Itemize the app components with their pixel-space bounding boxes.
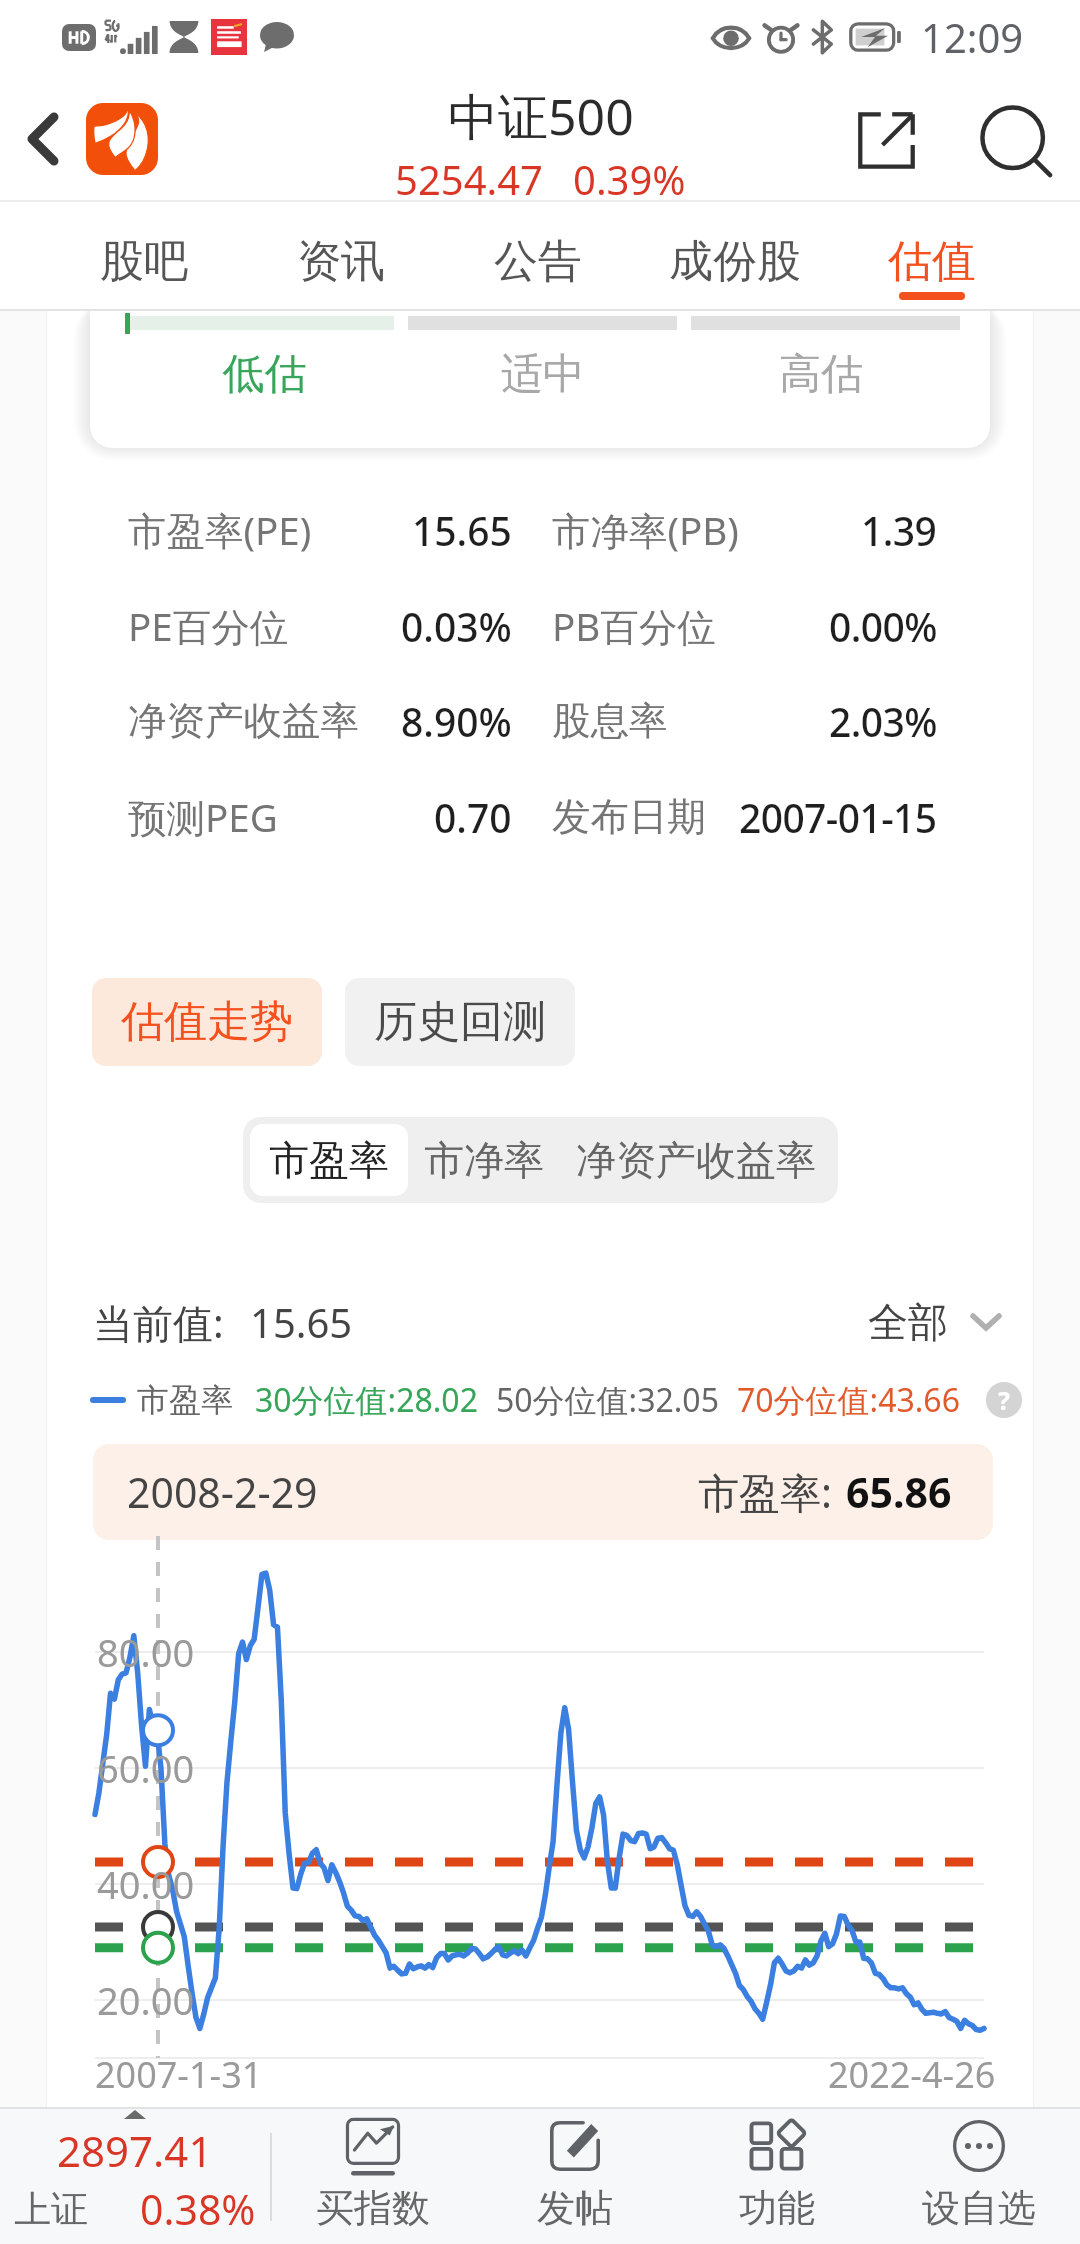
staticText: 适中	[404, 348, 682, 401]
staticText: 成份股	[669, 234, 801, 289]
staticText: 高估	[682, 348, 960, 401]
button[interactable]: Buy index	[272, 2109, 474, 2244]
button[interactable]: Help	[986, 1382, 1022, 1418]
button[interactable]: Eastmoney app	[86, 103, 158, 175]
button[interactable]: 估值走势	[92, 978, 322, 1066]
staticText: 2022-4-26	[828, 2050, 996, 2099]
staticText: 买指数	[316, 2184, 430, 2232]
button[interactable]: 市净率	[408, 1124, 560, 1196]
staticText: 全部	[868, 1297, 948, 1347]
staticText: 估值走势	[121, 995, 293, 1049]
staticText: 市盈率:	[698, 1464, 832, 1520]
staticText: 40.00	[97, 1858, 195, 1910]
staticText: 0.03%	[401, 600, 512, 653]
staticText: ?	[998, 1383, 1010, 1417]
staticText: 80.00	[97, 1626, 195, 1678]
staticText: 功能	[739, 2184, 815, 2232]
staticText: 发帖	[537, 2184, 613, 2232]
staticText: 60.00	[97, 1742, 195, 1794]
button[interactable]: 净资产收益率	[560, 1124, 831, 1196]
staticText: 20.00	[97, 1974, 195, 2026]
button[interactable]: 市盈率	[250, 1124, 408, 1196]
staticText: 设自选	[922, 2184, 1036, 2232]
button[interactable]: Post	[474, 2109, 676, 2244]
button[interactable]: Search	[960, 83, 1072, 195]
staticText: 市净率	[424, 1135, 544, 1185]
staticText: 0.38%	[140, 2181, 256, 2237]
staticText: 8.90%	[401, 695, 512, 748]
staticText: 15.65	[250, 1295, 353, 1349]
staticText: 上证	[14, 2186, 88, 2233]
staticText: 0.70	[434, 791, 512, 844]
staticText: 股息率	[552, 697, 668, 746]
staticText: 历史回测	[374, 995, 546, 1049]
button[interactable]: 估值	[833, 200, 1030, 311]
staticText: 当前值:	[93, 1295, 224, 1350]
button[interactable]: Range filter	[868, 1297, 1002, 1347]
button[interactable]: Functions	[676, 2109, 878, 2244]
staticText: 市净率(PB)	[552, 504, 739, 557]
staticText: 12:09	[921, 10, 1024, 64]
staticText: 30分位值:28.02	[255, 1378, 478, 1422]
staticText: 低估	[125, 348, 404, 401]
staticText: PB百分位	[552, 600, 716, 653]
button[interactable]: Back	[0, 84, 86, 194]
button[interactable]: 公告	[439, 200, 636, 311]
staticText: 净资产收益率	[128, 697, 359, 746]
button[interactable]: Add to watchlist	[878, 2109, 1080, 2244]
button[interactable]: Shanghai index	[0, 2109, 270, 2244]
staticText: 2897.41	[57, 2122, 213, 2179]
staticText: 发布日期	[552, 793, 706, 842]
button[interactable]: 历史回测	[345, 978, 575, 1066]
staticText: 50分位值:32.05	[496, 1378, 719, 1422]
staticText: 资讯	[297, 234, 385, 289]
staticText: 公告	[494, 234, 582, 289]
staticText: 2007-1-31	[95, 2050, 263, 2099]
staticText: 预测PEG	[128, 791, 278, 844]
staticText: 2008-2-29	[127, 1464, 318, 1520]
staticText: 股吧	[100, 234, 188, 289]
button[interactable]: Share	[848, 83, 960, 195]
staticText: 净资产收益率	[576, 1135, 816, 1185]
staticText: 65.86	[846, 1464, 952, 1520]
staticText: 5254.47	[395, 152, 543, 204]
staticText: 估值	[888, 234, 976, 289]
staticText: 市盈率(PE)	[128, 504, 312, 557]
button[interactable]: 股吧	[45, 200, 242, 311]
staticText: 0.00%	[829, 600, 937, 653]
staticText: 15.65	[412, 504, 512, 557]
staticText: 中证500	[448, 82, 634, 150]
staticText: 2007-01-15	[739, 791, 937, 844]
staticText: 2.03%	[829, 695, 937, 748]
button[interactable]: 成份股	[636, 200, 833, 311]
staticText: 70分位值:43.66	[737, 1378, 960, 1422]
staticText: 0.39%	[573, 152, 686, 204]
staticText: PE百分位	[128, 600, 289, 653]
staticText: 1.39	[861, 504, 937, 557]
staticText: 市盈率	[269, 1135, 389, 1185]
staticText: 市盈率	[137, 1380, 233, 1420]
button[interactable]: 资讯	[242, 200, 439, 311]
